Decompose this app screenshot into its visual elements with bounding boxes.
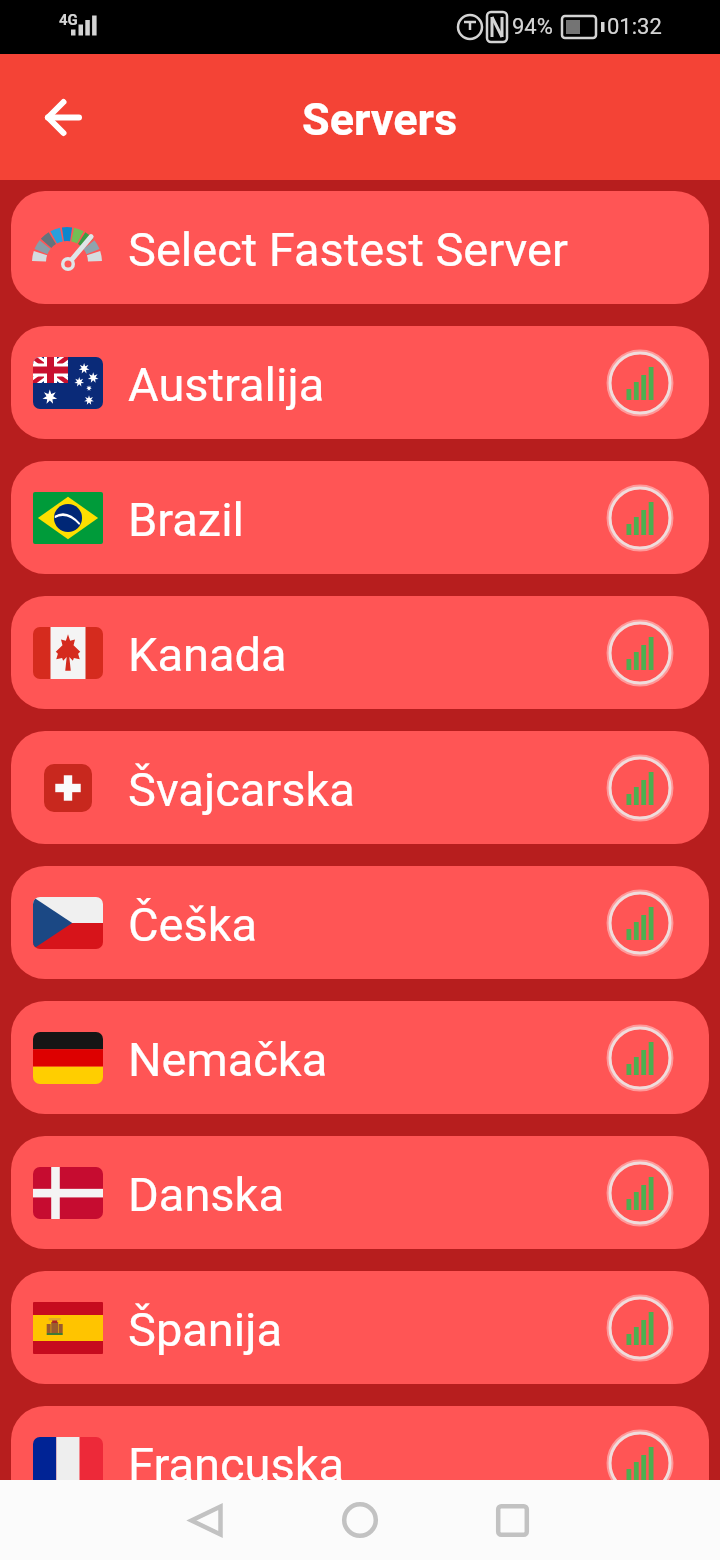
staticText: Australija bbox=[128, 357, 609, 412]
staticText: Češka bbox=[128, 897, 609, 952]
button[interactable]: Australija bbox=[11, 326, 709, 439]
button[interactable]: Kanada bbox=[11, 596, 709, 709]
staticText: Select Fastest Server bbox=[128, 222, 709, 277]
button[interactable]: Recent apps bbox=[472, 1480, 552, 1560]
staticText: Brazil bbox=[128, 492, 609, 547]
button[interactable]: Brazil bbox=[11, 461, 709, 574]
button[interactable]: Back bbox=[27, 81, 100, 154]
button[interactable]: Back bbox=[166, 1480, 246, 1560]
button[interactable]: Španija bbox=[11, 1271, 709, 1384]
staticText: Španija bbox=[128, 1302, 609, 1357]
staticText: Kanada bbox=[128, 627, 609, 682]
staticText: 4G bbox=[59, 11, 78, 29]
staticText: Nemačka bbox=[128, 1032, 609, 1087]
staticText: Danska bbox=[128, 1167, 609, 1222]
button[interactable]: Švajcarska bbox=[11, 731, 709, 844]
staticText: 94% bbox=[512, 14, 553, 40]
button[interactable]: Danska bbox=[11, 1136, 709, 1249]
staticText: Švajcarska bbox=[128, 762, 609, 817]
button[interactable]: Select Fastest Server bbox=[11, 191, 709, 304]
button[interactable]: Nemačka bbox=[11, 1001, 709, 1114]
staticText: 01:32 bbox=[607, 14, 662, 40]
button[interactable]: Home bbox=[320, 1480, 400, 1560]
button[interactable]: Češka bbox=[11, 866, 709, 979]
button[interactable]: Francuska bbox=[11, 1406, 709, 1480]
staticText: Servers bbox=[302, 93, 458, 146]
staticText: Francuska bbox=[128, 1437, 609, 1480]
